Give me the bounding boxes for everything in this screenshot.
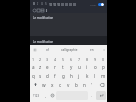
staticText: c — [59, 82, 62, 88]
staticText: en — [90, 48, 94, 52]
button[interactable]: p — [99, 63, 107, 71]
button[interactable]: 4 — [51, 55, 59, 63]
button[interactable]: Align left — [48, 1, 52, 7]
staticText: q — [32, 73, 35, 79]
button[interactable]: Emoji — [49, 89, 56, 102]
staticText: r — [54, 64, 56, 70]
staticText: g — [62, 73, 65, 79]
button[interactable]: w — [40, 80, 48, 89]
button[interactable]: h — [67, 71, 75, 80]
staticText: x — [51, 82, 54, 88]
button[interactable]: k — [83, 71, 91, 80]
button[interactable]: u — [75, 63, 83, 71]
button[interactable]: 2 — [37, 55, 44, 63]
button[interactable]: n — [80, 80, 88, 89]
button[interactable]: Insert link — [32, 7, 36, 13]
button[interactable]: Toggle HTML mode — [98, 3, 104, 6]
button[interactable]: s — [37, 71, 44, 80]
button[interactable]: Insert table — [40, 7, 44, 13]
staticText: y — [70, 64, 73, 70]
button[interactable]: b — [72, 80, 80, 89]
button[interactable]: Backspace — [96, 80, 107, 89]
staticText: m — [101, 73, 106, 79]
button[interactable]: Le modification — [30, 36, 107, 45]
button[interactable]: 1 — [30, 55, 37, 63]
button[interactable]: Shift — [30, 80, 40, 89]
button[interactable]: j — [75, 71, 83, 80]
button[interactable]: m — [99, 71, 107, 80]
button[interactable]: r — [51, 63, 59, 71]
button[interactable]: Underline — [40, 1, 44, 7]
staticText: , — [45, 93, 47, 98]
button[interactable]: Align right — [56, 1, 60, 7]
button[interactable]: Numbered list — [64, 1, 68, 7]
button[interactable]: Align center — [52, 1, 56, 7]
button[interactable]: 3 — [44, 55, 51, 63]
button[interactable]: Google search — [30, 45, 39, 55]
staticText: 2 — [39, 57, 42, 62]
button[interactable]: Increase indent — [72, 1, 76, 7]
button[interactable]: Bold — [32, 1, 36, 7]
button[interactable]: of — [39, 45, 56, 55]
staticText: b — [75, 82, 78, 88]
staticText: o — [94, 64, 97, 70]
button[interactable]: Decrease indent — [68, 1, 72, 7]
button[interactable]: l — [91, 71, 99, 80]
button[interactable]: g — [59, 71, 67, 80]
button[interactable]: ' — [88, 80, 96, 89]
button[interactable]: en — [83, 45, 101, 55]
button[interactable]: calligraphie — [56, 45, 83, 55]
button[interactable]: Bulleted list — [60, 1, 64, 7]
button[interactable]: Le modification — [30, 13, 107, 36]
button[interactable]: Insert image — [36, 7, 40, 13]
button[interactable]: v — [64, 80, 72, 89]
staticText: HTML — [90, 3, 97, 6]
staticText: Le modification — [33, 40, 54, 44]
button[interactable]: Italic — [36, 1, 40, 7]
staticText: u — [78, 64, 81, 70]
button[interactable]: 6 — [67, 55, 75, 63]
button[interactable]: o — [91, 63, 99, 71]
button[interactable]: x — [48, 80, 56, 89]
button[interactable]: 5 — [59, 55, 67, 63]
button[interactable]: 0 — [99, 55, 107, 63]
button[interactable]: More options — [44, 7, 48, 13]
staticText: 8 — [86, 57, 89, 62]
button[interactable]: f — [51, 71, 59, 80]
button[interactable]: d — [44, 71, 51, 80]
staticText: p — [102, 64, 105, 70]
button[interactable]: q — [30, 71, 37, 80]
button[interactable]: 9 — [91, 55, 99, 63]
button[interactable]: More suggestions — [101, 45, 107, 55]
staticText: j — [78, 73, 80, 79]
staticText: a — [32, 64, 35, 70]
staticText: of — [46, 48, 49, 52]
staticText: U — [41, 2, 44, 6]
button[interactable]: z — [37, 63, 44, 71]
staticText: 0 — [102, 57, 105, 62]
button[interactable]: Enter — [96, 91, 106, 100]
button[interactable]: e — [44, 63, 51, 71]
button[interactable]: 8 — [83, 55, 91, 63]
staticText: 3 — [46, 57, 49, 62]
button[interactable]: t — [59, 63, 67, 71]
staticText: f — [54, 73, 56, 79]
button[interactable]: 7 — [75, 55, 83, 63]
button[interactable]: c — [56, 80, 64, 89]
button[interactable]: i — [83, 63, 91, 71]
staticText: l — [94, 73, 96, 79]
staticText: B — [33, 2, 36, 6]
staticText: n — [83, 82, 86, 88]
staticText: . — [91, 93, 93, 98]
staticText: 4 — [54, 57, 57, 62]
staticText: d — [46, 73, 49, 79]
button[interactable]: Strikethrough — [44, 1, 48, 7]
button[interactable]: Comma — [42, 89, 49, 102]
button[interactable]: y — [67, 63, 75, 71]
staticText: i — [86, 64, 88, 70]
button[interactable]: ?123 — [30, 89, 42, 102]
button[interactable]: a — [30, 63, 37, 71]
staticText: k — [86, 73, 89, 79]
